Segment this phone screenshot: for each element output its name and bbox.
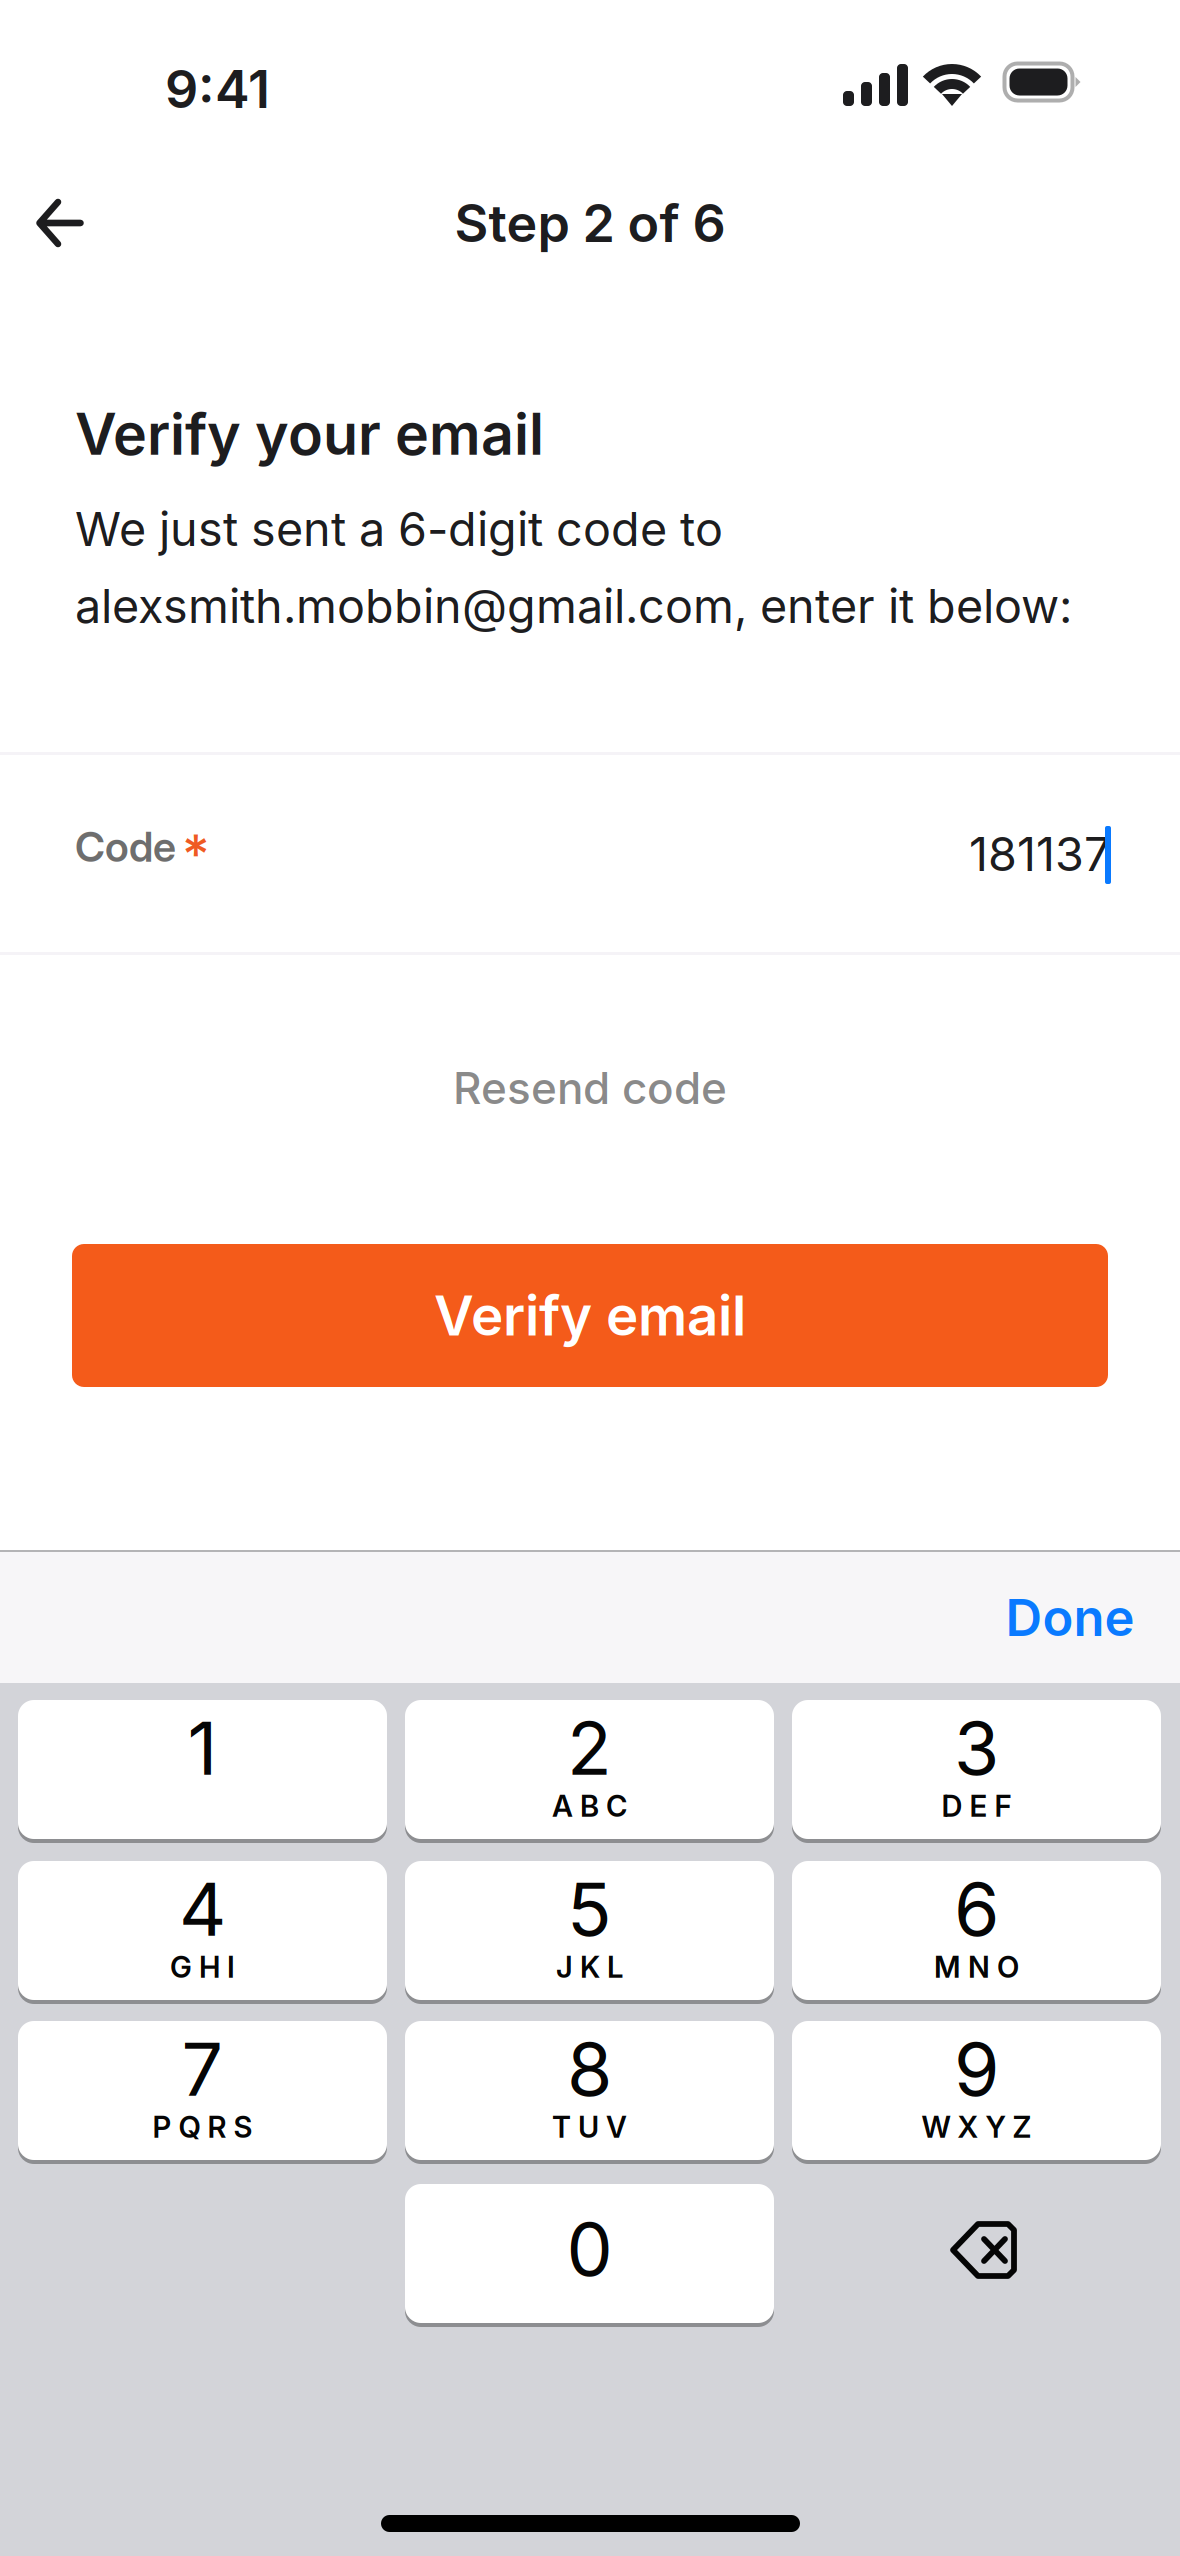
staticText: alexsmith.mobbin@gmail.com, enter it bel… [75,578,1072,634]
staticText: Verify your email [75,399,544,469]
staticText: G H I [170,1949,235,1985]
staticText: 3 [954,1704,999,1792]
button[interactable]: Back [0,0,1180,2556]
staticText: M N O [934,1949,1019,1985]
staticText: T U V [552,2109,627,2145]
button[interactable]: Delete [792,2184,1161,2327]
staticText: 1 [187,1704,217,1792]
button[interactable]: 1 [18,1700,387,1843]
staticText: 181137 [969,826,1110,882]
staticText: J K L [556,1949,623,1985]
staticText: P Q R S [152,2109,252,2145]
staticText: 7 [181,2025,223,2113]
button[interactable]: 7 [18,2021,387,2164]
staticText: Verify email [434,1282,746,1348]
staticText: 5 [567,1865,612,1953]
staticText: We just sent a 6-digit code to [75,501,723,557]
staticText: W X Y Z [921,2109,1031,2145]
staticText: Resend code [453,1061,727,1115]
staticText: 2 [567,1704,612,1792]
staticText: 4 [179,1865,226,1953]
staticText: A B C [552,1788,627,1824]
button[interactable]: 9 [792,2021,1161,2164]
staticText: D E F [941,1788,1011,1824]
staticText: 8 [567,2025,612,2113]
staticText: 9:41 [165,57,270,120]
button[interactable]: 2 [405,1700,774,1843]
staticText: Code [75,822,176,872]
staticText: Done [1005,1587,1134,1648]
staticText: 0 [566,2205,612,2293]
staticText: * [182,822,210,886]
staticText: 9 [954,2025,999,2113]
staticText: 6 [954,1865,999,1953]
button[interactable]: Verify email [0,0,1180,2556]
button[interactable]: 5 [405,1861,774,2004]
button[interactable]: 6 [792,1861,1161,2004]
button[interactable]: Resend code [0,0,1180,2556]
button[interactable]: 3 [792,1700,1161,1843]
button[interactable]: Done [0,0,1180,2556]
button[interactable]: 0 [405,2184,774,2327]
staticText: Step 2 of 6 [454,191,725,254]
button[interactable]: 8 [405,2021,774,2164]
button[interactable]: 4 [18,1861,387,2004]
